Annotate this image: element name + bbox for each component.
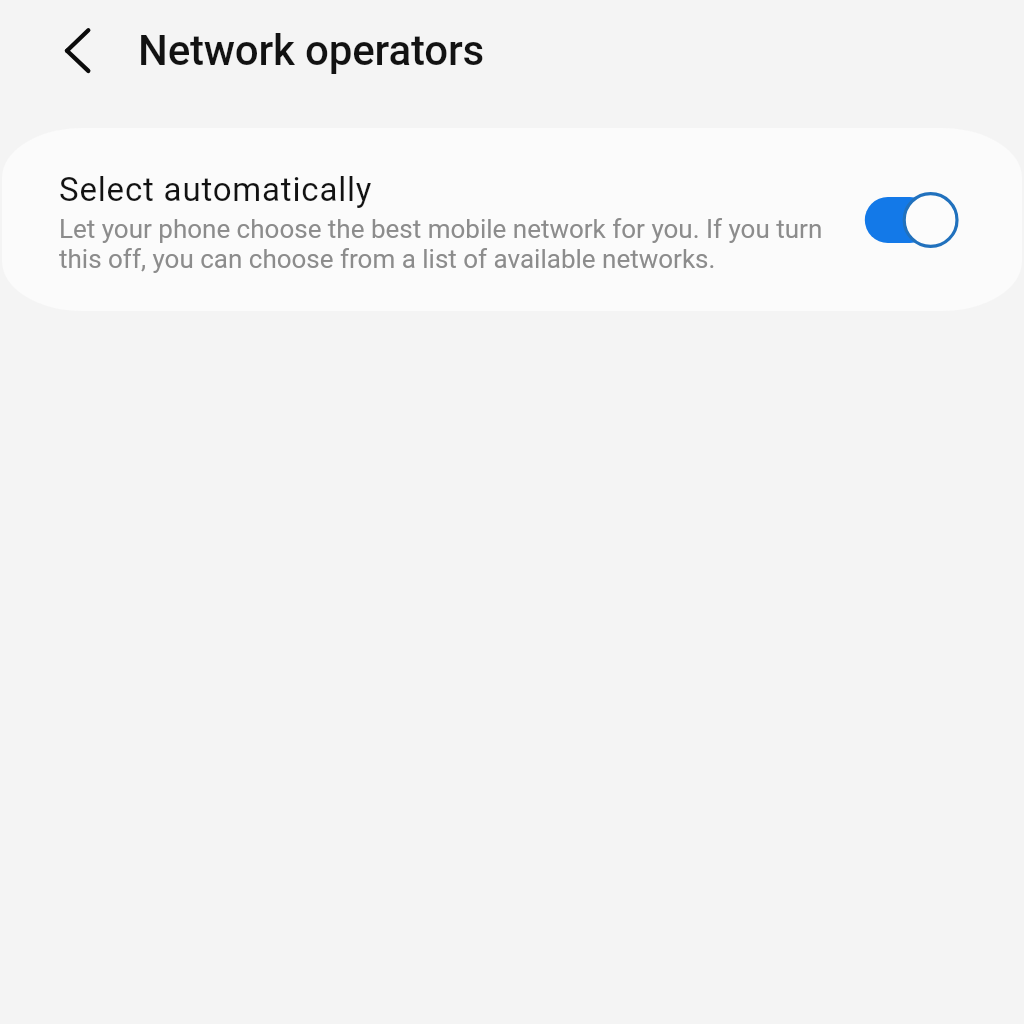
button[interactable]: Select automatically, on: [863, 181, 973, 259]
staticText: Let your phone choose the best mobile ne…: [59, 214, 849, 274]
staticText: Select automatically: [59, 170, 373, 209]
button[interactable]: Navigate up: [34, 8, 118, 92]
button[interactable]: Select automatically: [2, 128, 1022, 311]
staticText: Network operators: [138, 26, 484, 75]
